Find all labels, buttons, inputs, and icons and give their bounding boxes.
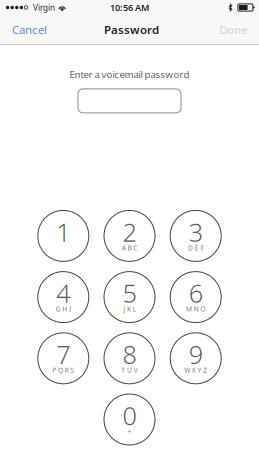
staticText: Password [104, 22, 159, 37]
button[interactable]: 5 [104, 272, 155, 323]
button[interactable]: 6 [170, 272, 221, 323]
button[interactable]: 8 [104, 333, 155, 384]
staticText: + [127, 427, 131, 436]
staticText: F [200, 243, 203, 252]
staticText: I [69, 304, 71, 314]
staticText: Cancel [12, 22, 47, 37]
staticText: J [123, 304, 125, 314]
button[interactable]: 3 [170, 210, 221, 261]
staticText: 9 [189, 337, 203, 371]
button[interactable]: 9 [170, 333, 221, 384]
staticText: U [127, 366, 132, 375]
staticText: A [122, 243, 126, 252]
staticText: M [186, 304, 192, 314]
staticText: 8 [122, 337, 136, 371]
button[interactable]: 1 [38, 210, 89, 261]
staticText: G [56, 304, 61, 314]
staticText: 3 [189, 214, 203, 249]
staticText: Virgin [33, 2, 55, 13]
staticText: B [127, 243, 131, 252]
staticText: T [121, 366, 125, 375]
staticText: 7 [56, 337, 70, 371]
staticText: 10:56 AM [110, 1, 149, 14]
staticText: 6 [189, 276, 203, 310]
button[interactable]: Cancel [4, 15, 55, 44]
staticText: 1 [56, 214, 70, 249]
staticText: R [65, 366, 69, 375]
button[interactable]: 4 [38, 272, 89, 323]
staticText: N [194, 304, 199, 314]
staticText: Z [203, 366, 207, 375]
staticText: Done [219, 22, 247, 37]
staticText: Enter a voicemail password [69, 68, 189, 81]
staticText: P [52, 366, 56, 375]
button[interactable]: 2 [104, 210, 155, 261]
staticText: Q [58, 366, 63, 375]
staticText: Y [197, 366, 201, 375]
staticText: D [188, 243, 193, 252]
staticText: L [133, 304, 136, 314]
staticText: 5 [122, 276, 136, 310]
staticText: X [192, 366, 196, 375]
staticText: W [184, 366, 190, 375]
staticText: 4 [56, 276, 70, 310]
button[interactable]: 7 [38, 333, 89, 384]
staticText: C [133, 243, 137, 252]
staticText: H [62, 304, 67, 314]
staticText: 0 [122, 398, 136, 433]
button[interactable]: Done [211, 15, 255, 44]
staticText: V [134, 366, 138, 375]
staticText: S [70, 366, 74, 375]
staticText: E [195, 243, 199, 252]
staticText: K [127, 304, 131, 314]
staticText: O [200, 304, 205, 314]
staticText: 2 [122, 214, 136, 249]
button[interactable]: 0 [104, 394, 155, 445]
